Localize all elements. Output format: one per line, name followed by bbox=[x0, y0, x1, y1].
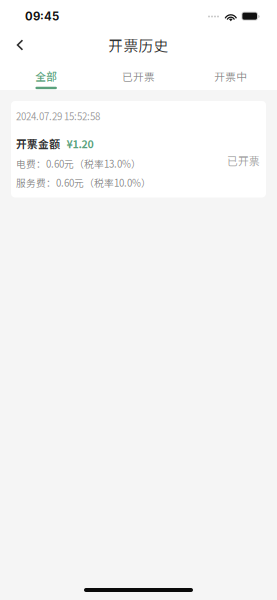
staticText: 服务费：0.60元（税率10.0%） bbox=[16, 175, 151, 189]
staticText: 2024.07.29 15:52:58 bbox=[16, 109, 100, 123]
staticText: 09:45 bbox=[25, 10, 59, 23]
staticText: 开票历史 bbox=[108, 34, 168, 56]
staticText: 全部 bbox=[35, 68, 57, 84]
button[interactable]: 全部 bbox=[0, 57, 92, 92]
staticText: ¥1.20 bbox=[66, 136, 93, 151]
button[interactable]: 已开票 bbox=[92, 57, 185, 92]
staticText: 开票金额 bbox=[16, 136, 60, 151]
staticText: 已开票 bbox=[122, 68, 155, 84]
staticText: 已开票 bbox=[227, 153, 260, 168]
staticText: 电费：0.60元（税率13.0%） bbox=[16, 156, 141, 170]
button[interactable]: 开票中 bbox=[185, 57, 277, 92]
button[interactable]: 2024.07.29 15:52:58 bbox=[11, 101, 266, 197]
button[interactable]: 返回 bbox=[3, 32, 37, 58]
staticText: 开票中 bbox=[214, 68, 247, 84]
